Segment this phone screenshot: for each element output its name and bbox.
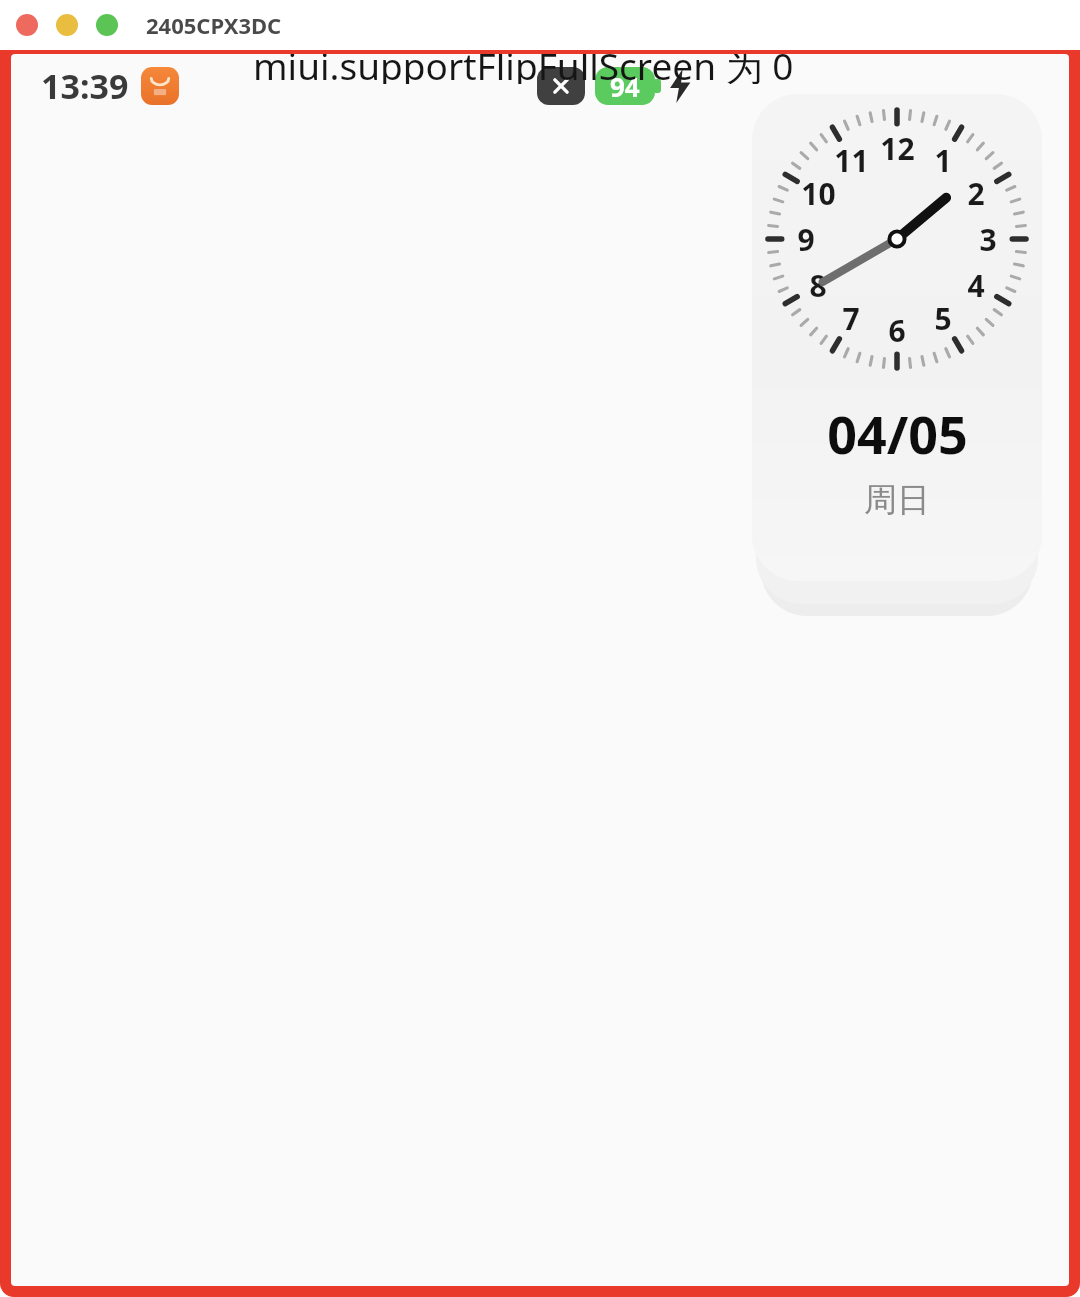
staticText: 11 xyxy=(834,140,869,181)
staticText: 3 xyxy=(979,219,997,260)
staticText: 94 xyxy=(610,69,640,104)
button[interactable]: Clock widget xyxy=(752,94,1042,581)
staticText: 13:39 xyxy=(41,63,129,109)
other: Battery 94 percent xyxy=(595,67,661,105)
staticText: 7 xyxy=(842,298,860,339)
staticText: 9 xyxy=(797,219,815,260)
staticText: 5 xyxy=(934,298,952,339)
staticText: 1 xyxy=(934,140,952,181)
staticText: 周日 xyxy=(864,479,930,521)
staticText: 2 xyxy=(967,173,985,214)
other: Charging xyxy=(669,69,691,103)
staticText: 2405CPX3DC xyxy=(146,10,282,40)
staticText: 8 xyxy=(809,265,827,306)
staticText: 10 xyxy=(801,173,836,214)
button[interactable]: Close window xyxy=(16,14,38,36)
staticText: 04/05 xyxy=(827,398,968,469)
button[interactable]: Minimize window xyxy=(56,14,78,36)
staticText: miui.supportFlipFullScreen 为 0 xyxy=(253,54,794,84)
staticText: 6 xyxy=(888,310,906,351)
staticText: 4 xyxy=(967,265,985,306)
other: No signal xyxy=(537,67,585,105)
staticText: 12 xyxy=(880,128,915,169)
button[interactable]: Maximize window xyxy=(96,14,118,36)
button[interactable]: Mi Store xyxy=(141,67,179,105)
